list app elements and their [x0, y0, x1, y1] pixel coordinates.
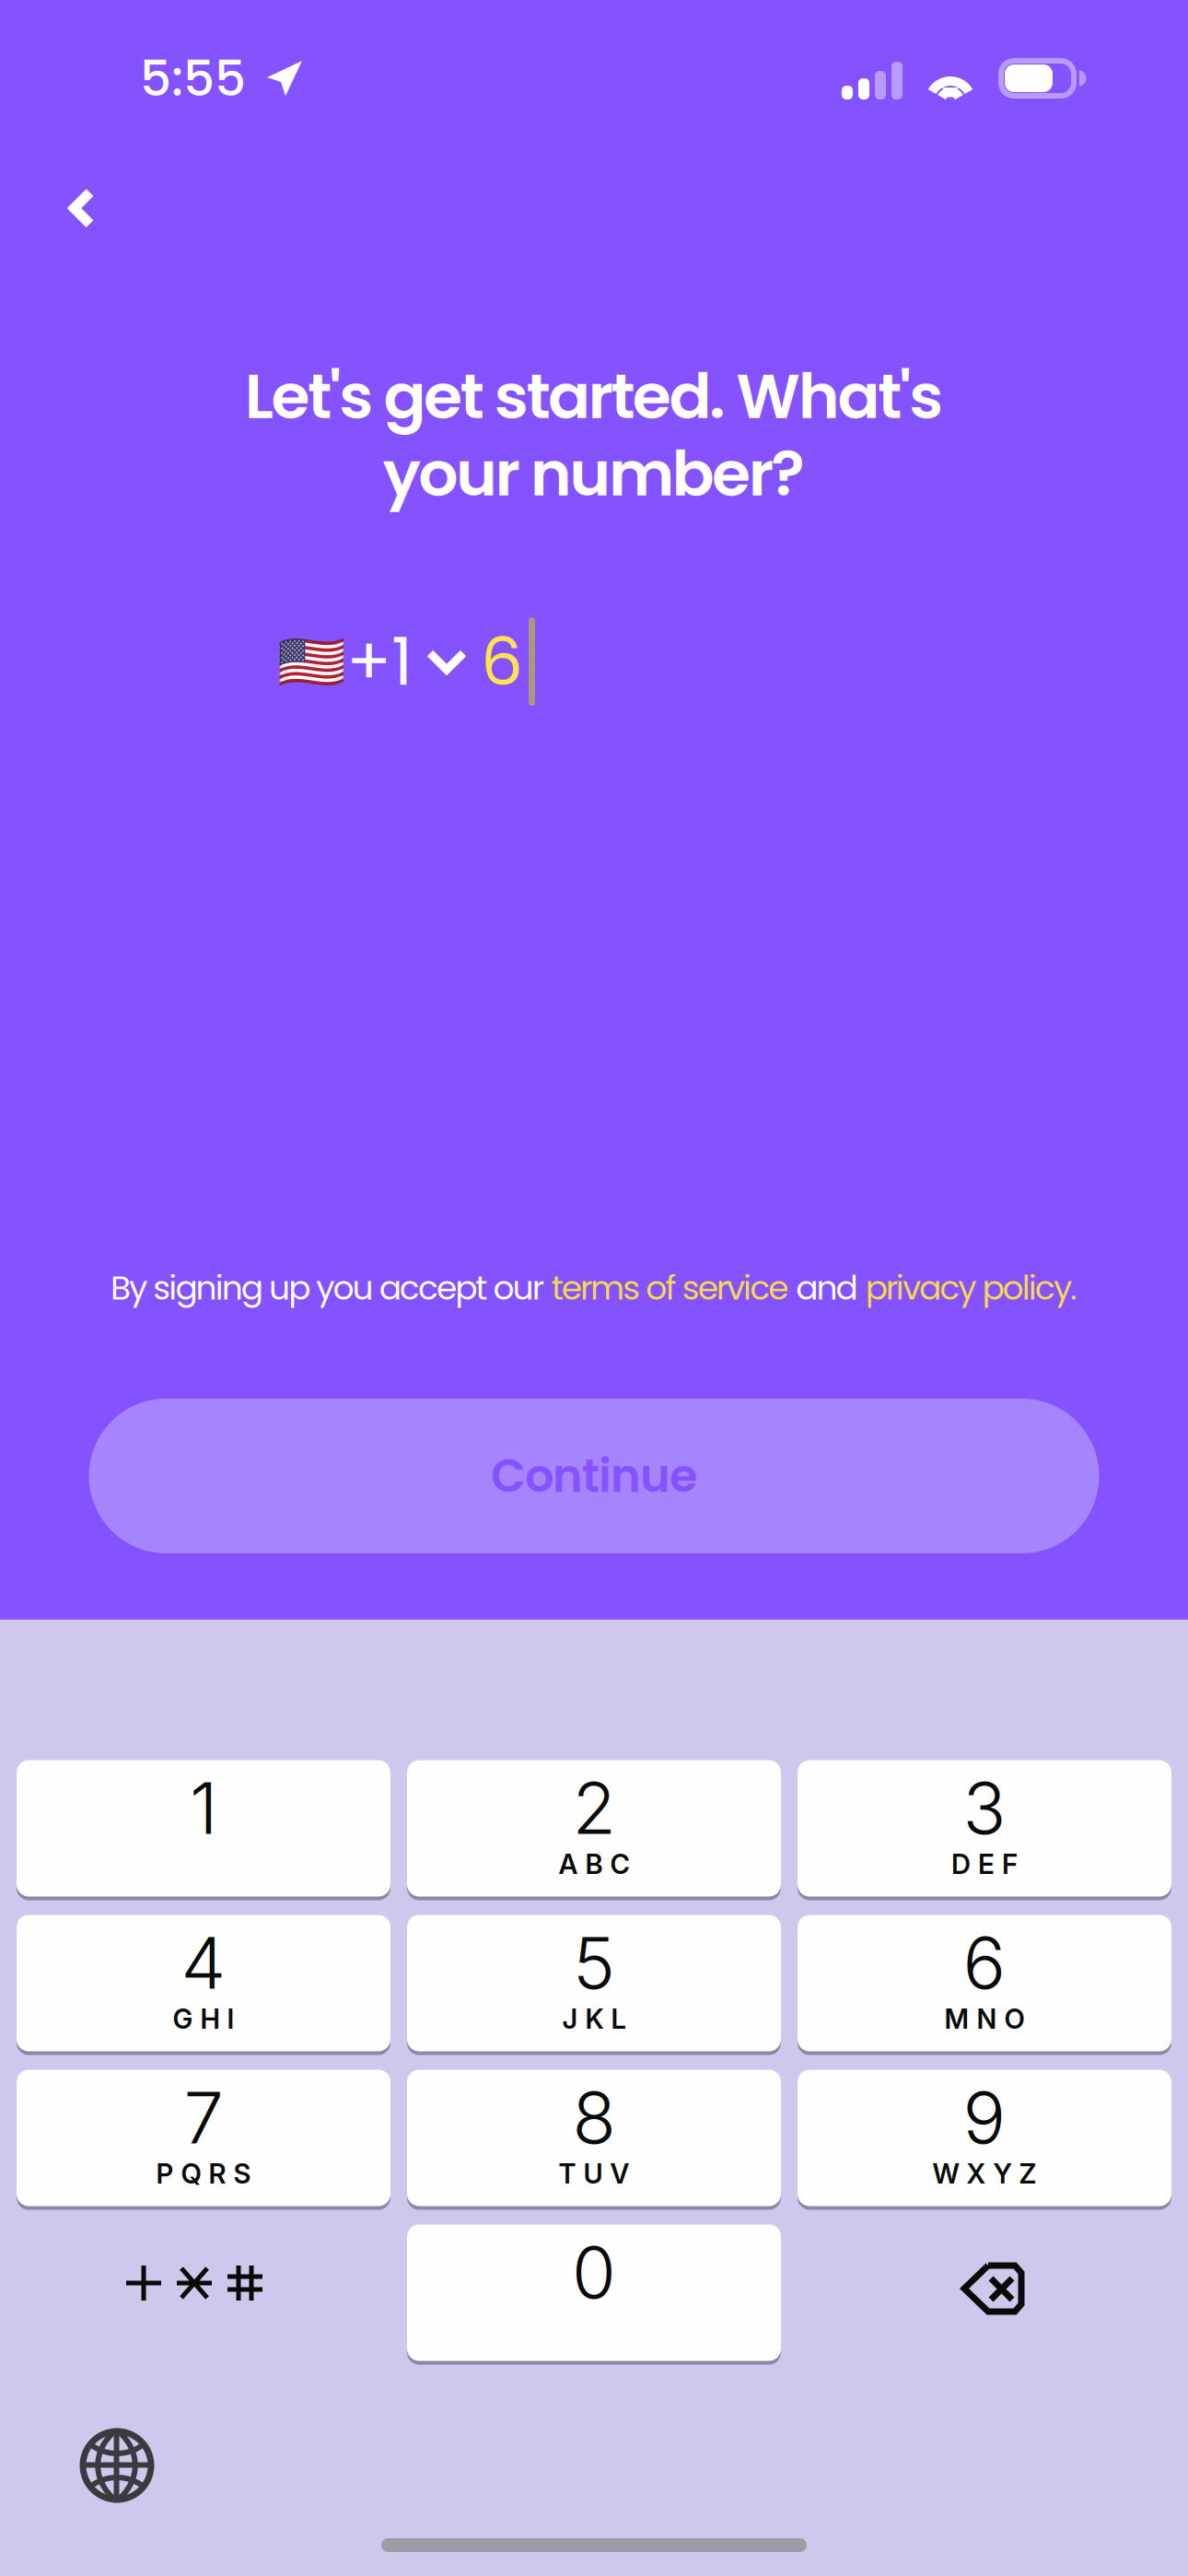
- staticText: 0: [572, 2229, 616, 2315]
- button[interactable]: 7: [17, 2069, 390, 2209]
- staticText: Let's get started. What's: [245, 352, 943, 440]
- staticText: and: [789, 1265, 865, 1311]
- staticText: 1: [190, 1765, 217, 1851]
- staticText: 8: [572, 2074, 616, 2161]
- button[interactable]: Back: [42, 169, 122, 248]
- staticText: 4: [181, 1920, 226, 2006]
- button[interactable]: 9: [798, 2069, 1171, 2209]
- button[interactable]: 3: [798, 1760, 1171, 1900]
- staticText: +1: [346, 615, 413, 708]
- staticText: TUV: [559, 2157, 629, 2190]
- button[interactable]: 4: [17, 1914, 390, 2055]
- button[interactable]: privacy policy.: [865, 1265, 1077, 1311]
- staticText: PQRS: [156, 2157, 251, 2190]
- staticText: Continue: [491, 1444, 697, 1508]
- button[interactable]: 1: [17, 1760, 390, 1900]
- staticText: 6: [963, 1920, 1006, 2006]
- button[interactable]: 6: [798, 1914, 1171, 2055]
- button[interactable]: Continue: [89, 1399, 1099, 1553]
- staticText: terms of service: [551, 1265, 789, 1311]
- staticText: 2: [572, 1765, 616, 1851]
- button[interactable]: 0: [407, 2224, 781, 2364]
- staticText: 5:55: [140, 44, 246, 113]
- staticText: DEF: [951, 1848, 1018, 1880]
- staticText: 🇺🇸: [277, 629, 346, 694]
- staticText: WXYZ: [932, 2157, 1037, 2190]
- button[interactable]: 2: [407, 1760, 781, 1900]
- staticText: GHI: [173, 2002, 234, 2035]
- staticText: 7: [184, 2074, 223, 2161]
- button[interactable]: Plus, star and pound: [17, 2224, 390, 2364]
- button[interactable]: 5: [407, 1914, 781, 2055]
- staticText: your number?: [383, 430, 805, 517]
- staticText: 5: [573, 1920, 615, 2006]
- staticText: privacy policy.: [865, 1265, 1077, 1311]
- staticText: 9: [963, 2074, 1006, 2161]
- staticText: ABC: [559, 1848, 629, 1880]
- button[interactable]: Change keyboard: [66, 2415, 168, 2516]
- staticText: JKL: [562, 2002, 626, 2035]
- button[interactable]: 8: [407, 2069, 781, 2209]
- staticText: By signing up you accept our: [111, 1265, 551, 1311]
- button[interactable]: terms of service: [551, 1265, 789, 1311]
- staticText: 3: [963, 1765, 1006, 1851]
- button[interactable]: Delete: [798, 2224, 1171, 2364]
- staticText: 6: [481, 615, 523, 708]
- staticText: MNO: [944, 2002, 1025, 2035]
